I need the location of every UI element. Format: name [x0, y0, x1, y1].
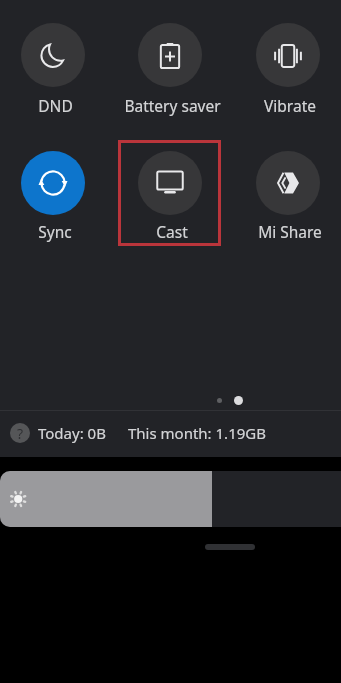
- staticText: This month: 1.19GB: [128, 423, 266, 443]
- staticText: Cast: [156, 221, 188, 242]
- staticText: Vibrate: [264, 95, 316, 116]
- button[interactable]: Vibrate: [237, 20, 339, 125]
- button[interactable]: Battery saver: [119, 20, 221, 125]
- button[interactable]: DND: [2, 20, 104, 125]
- staticText: Sync: [38, 221, 72, 242]
- button[interactable]: Mi Share: [237, 148, 339, 253]
- staticText: Today: 0B: [38, 423, 106, 443]
- button[interactable]: ?: [0, 410, 341, 456]
- staticText: DND: [38, 95, 73, 116]
- button[interactable]: Cast: [119, 148, 221, 253]
- button[interactable]: Sync: [2, 148, 104, 253]
- staticText: ?: [17, 424, 24, 443]
- staticText: Battery saver: [124, 95, 221, 116]
- staticText: Mi Share: [258, 221, 322, 242]
- button[interactable]: Brightness: [0, 471, 341, 527]
